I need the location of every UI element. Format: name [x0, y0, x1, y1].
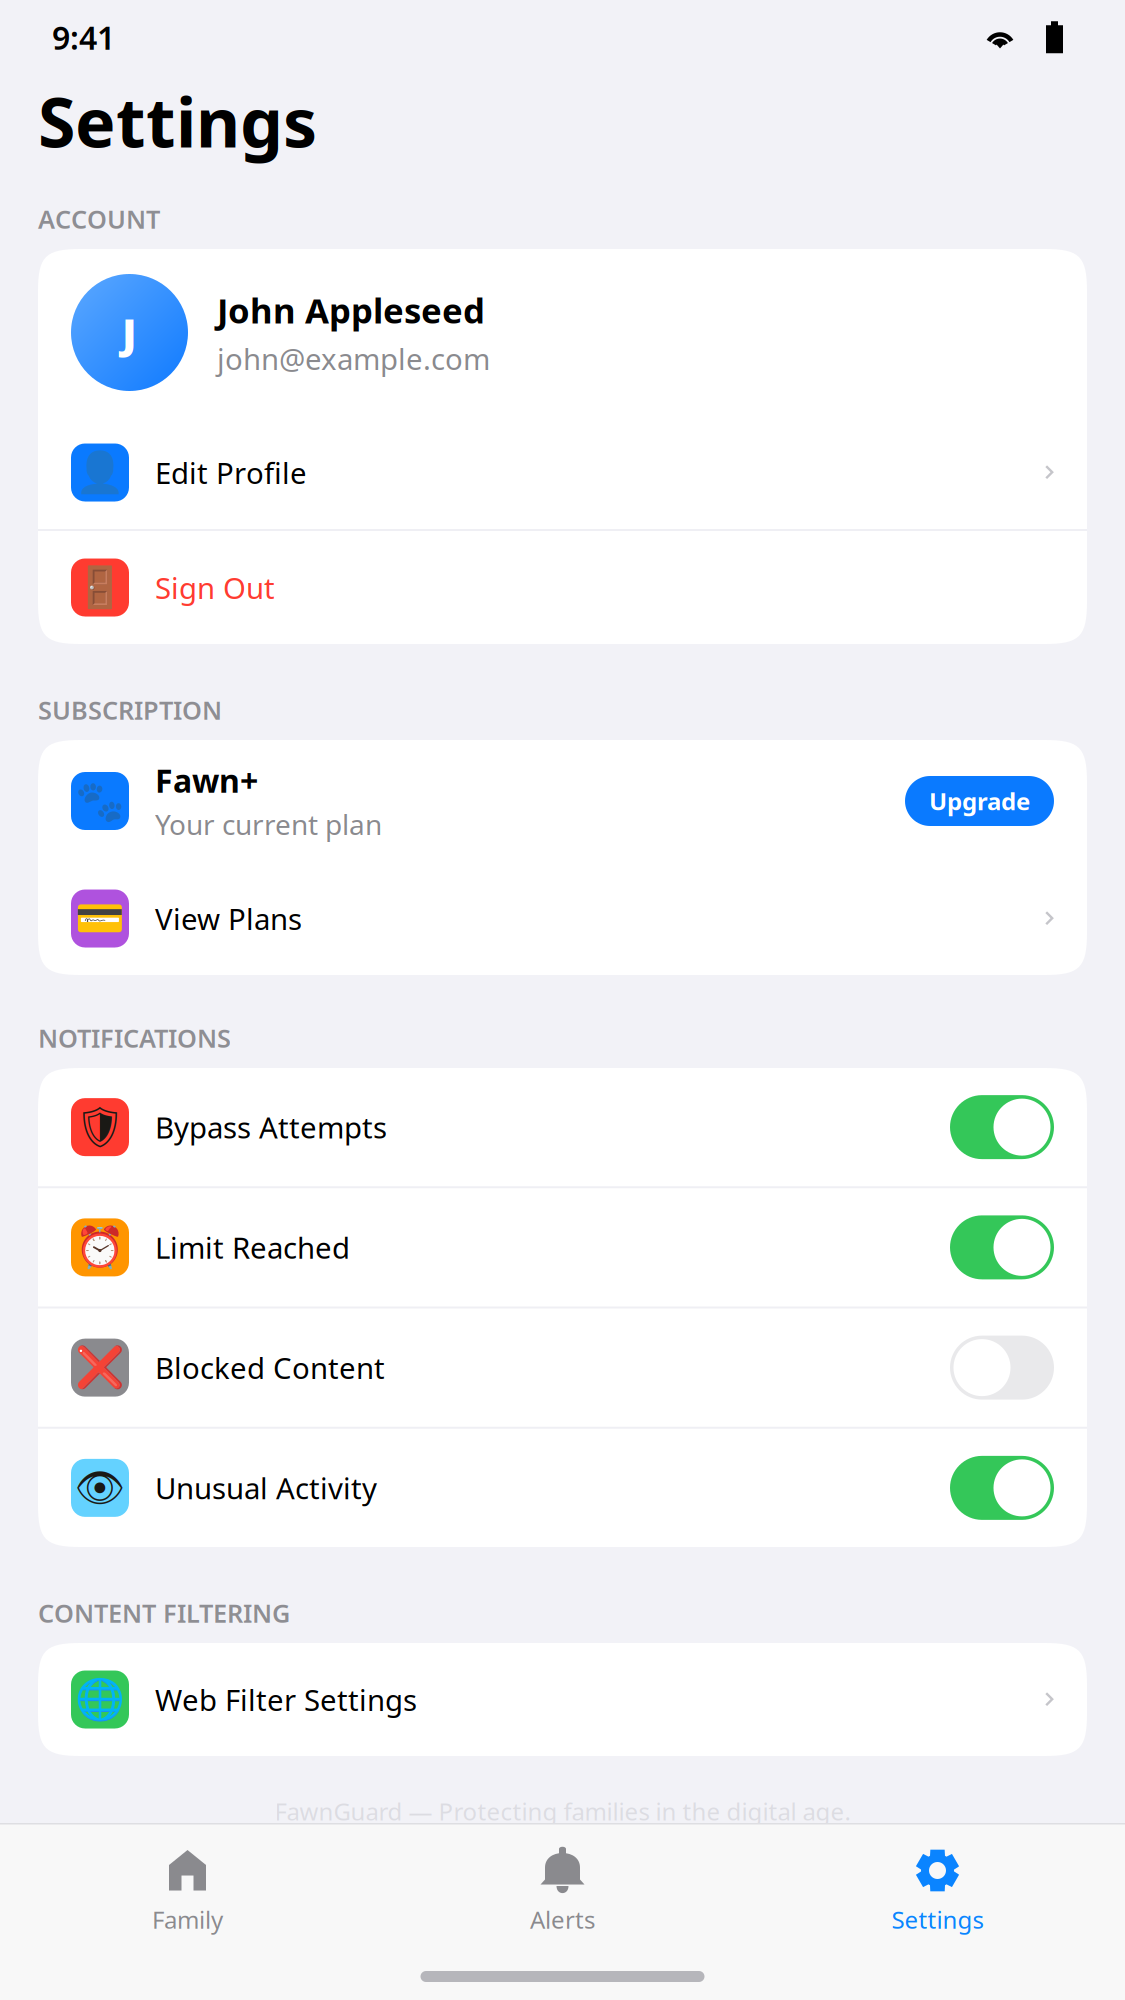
- staticText: Sign Out: [155, 568, 275, 607]
- staticText: Family: [152, 1903, 223, 1935]
- staticText: Upgrade: [929, 785, 1030, 817]
- staticText: 9:41: [52, 16, 115, 58]
- staticText: J: [122, 305, 137, 360]
- staticText: Web Filter Settings: [155, 1680, 417, 1719]
- button[interactable]: Family: [0, 1847, 375, 1935]
- staticText: John Appleseed: [217, 287, 485, 333]
- staticText: Alerts: [530, 1903, 595, 1935]
- button[interactable]: 🌐: [38, 1643, 1087, 1756]
- button[interactable]: 💳: [38, 862, 1087, 975]
- staticText: Blocked Content: [155, 1348, 385, 1387]
- staticText: ⏰: [75, 1224, 125, 1270]
- staticText: Settings: [38, 76, 317, 166]
- button[interactable]: Upgrade: [905, 776, 1054, 826]
- staticText: Your current plan: [155, 806, 382, 843]
- staticText: 🚪: [75, 565, 125, 610]
- button[interactable]: 👁: [38, 1429, 1087, 1547]
- staticText: SUBSCRIPTION: [38, 693, 222, 727]
- button[interactable]: ⏰: [38, 1188, 1087, 1306]
- staticText: 👤: [75, 450, 125, 495]
- staticText: 💳: [75, 896, 125, 941]
- staticText: Unusual Activity: [155, 1468, 377, 1507]
- staticText: ACCOUNT: [38, 202, 160, 236]
- staticText: Fawn+: [155, 759, 258, 802]
- staticText: NOTIFICATIONS: [38, 1021, 231, 1055]
- staticText: Edit Profile: [155, 453, 307, 492]
- staticText: 🌐: [75, 1677, 125, 1722]
- button[interactable]: Settings: [750, 1847, 1125, 1935]
- staticText: Bypass Attempts: [155, 1108, 387, 1147]
- staticText: john@example.com: [217, 339, 490, 378]
- button[interactable]: ❌: [38, 1308, 1087, 1427]
- staticText: ❌: [75, 1345, 125, 1390]
- staticText: 👁: [74, 1465, 125, 1511]
- button[interactable]: 👤: [38, 416, 1087, 529]
- staticText: CONTENT FILTERING: [38, 1596, 290, 1630]
- staticText: 🛡: [74, 1104, 125, 1150]
- staticText: View Plans: [155, 899, 302, 938]
- button[interactable]: Alerts: [375, 1847, 750, 1935]
- button[interactable]: 🚪: [38, 531, 1087, 644]
- staticText: Limit Reached: [155, 1228, 350, 1267]
- button[interactable]: 🛡: [38, 1068, 1087, 1186]
- staticText: FawnGuard — Protecting families in the d…: [274, 1795, 850, 1827]
- staticText: 🐾: [75, 778, 125, 824]
- staticText: Settings: [891, 1903, 983, 1935]
